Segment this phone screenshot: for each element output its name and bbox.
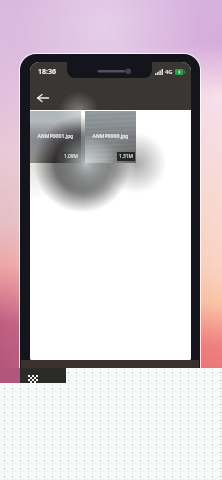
button[interactable]: ANMP0000.jpg bbox=[85, 111, 136, 163]
staticText: 18:36 bbox=[38, 67, 56, 77]
button[interactable]: ANMP0001.jpg bbox=[30, 111, 81, 163]
staticText: 4G bbox=[165, 68, 173, 76]
staticText: ANMP0000.jpg bbox=[92, 132, 129, 139]
button[interactable]: Back bbox=[33, 88, 53, 108]
staticText: 1.31M bbox=[119, 153, 133, 160]
staticText: ANMP0001.jpg bbox=[37, 132, 74, 139]
staticText: 1.09M bbox=[64, 153, 78, 160]
